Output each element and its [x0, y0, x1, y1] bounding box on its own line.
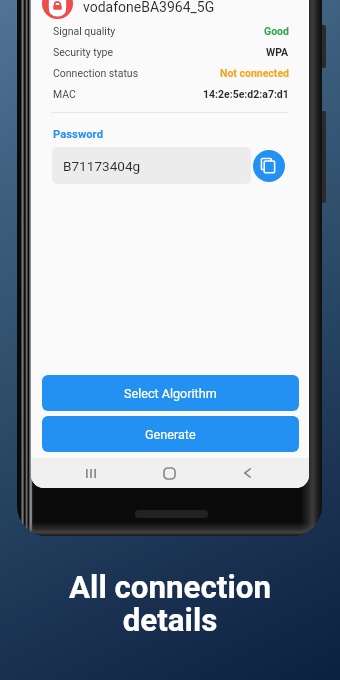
staticText: MAC [53, 88, 76, 100]
staticText: Security type [53, 46, 114, 58]
button[interactable]: Select Algorithm [42, 375, 299, 411]
staticText: All connection details [0, 569, 340, 639]
staticText: Good [264, 25, 289, 37]
button[interactable]: Security type [53, 45, 289, 59]
button[interactable]: Back [227, 458, 267, 488]
button[interactable]: Generate [42, 416, 299, 452]
staticText: WPA [266, 46, 289, 58]
button[interactable]: Copy password [253, 150, 285, 182]
staticText: Password [53, 128, 103, 141]
staticText: Select Algorithm [124, 386, 217, 401]
button[interactable]: Recents [71, 458, 111, 488]
button[interactable]: Connection status [53, 66, 289, 80]
button[interactable]: B71173404g [52, 147, 251, 184]
button[interactable]: Home [149, 458, 189, 488]
staticText: Not connected [220, 67, 289, 79]
staticText: Generate [145, 427, 196, 442]
staticText: B71173404g [63, 158, 141, 174]
button[interactable]: Signal quality [53, 24, 289, 38]
button[interactable]: MAC [53, 87, 289, 101]
staticText: Connection status [53, 67, 139, 79]
staticText: 14:2e:5e:d2:a7:d1 [203, 88, 289, 100]
staticText: Signal quality [53, 25, 116, 37]
staticText: vodafoneBA3964_5G [83, 0, 215, 15]
